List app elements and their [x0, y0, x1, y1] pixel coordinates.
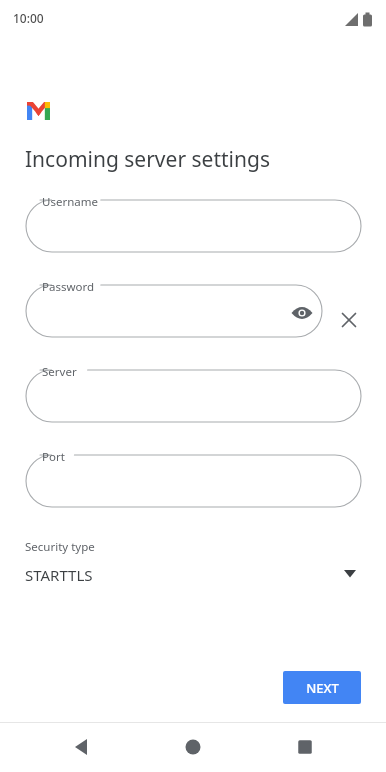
- staticText: 10:00: [13, 10, 44, 26]
- button[interactable]: Security type: [24, 536, 362, 592]
- staticText: Incoming server settings: [25, 145, 270, 174]
- button[interactable]: Port: [26, 455, 361, 507]
- button[interactable]: Show password: [290, 301, 314, 325]
- button[interactable]: NEXT: [283, 671, 361, 704]
- button[interactable]: Home: [177, 731, 209, 763]
- button[interactable]: Server: [26, 370, 361, 422]
- button[interactable]: Clear password: [337, 308, 361, 332]
- button[interactable]: Username: [26, 200, 361, 252]
- staticText: Username: [42, 194, 98, 210]
- staticText: Port: [42, 449, 65, 465]
- button[interactable]: Back: [66, 731, 98, 763]
- button[interactable]: Recent apps: [289, 731, 321, 763]
- staticText: NEXT: [306, 679, 339, 697]
- button[interactable]: Password: [26, 285, 322, 337]
- staticText: STARTTLS: [25, 565, 93, 585]
- staticText: Security type: [25, 539, 95, 555]
- staticText: Server: [42, 364, 77, 380]
- staticText: Password: [42, 279, 95, 295]
